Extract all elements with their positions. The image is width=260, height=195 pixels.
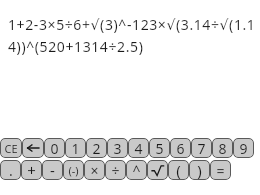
staticText: (-) — [68, 163, 79, 178]
staticText: 6 — [176, 139, 185, 158]
button[interactable]: 4 — [128, 138, 149, 158]
button[interactable]: Equals — [210, 160, 231, 180]
button[interactable]: 8 — [212, 138, 233, 158]
button[interactable]: 2 — [86, 138, 107, 158]
button[interactable]: Negate — [63, 160, 84, 180]
button[interactable]: 6 — [170, 138, 191, 158]
button[interactable]: 3 — [107, 138, 128, 158]
staticText: 7 — [197, 139, 206, 158]
staticText: . — [9, 161, 13, 180]
button[interactable]: 9 — [233, 138, 254, 158]
button[interactable]: 1 — [65, 138, 86, 158]
staticText: - — [50, 160, 55, 180]
staticText: × — [90, 161, 99, 180]
button[interactable]: Multiply — [84, 160, 105, 180]
staticText: ^ — [132, 161, 141, 180]
staticText: 9 — [239, 139, 248, 158]
staticText: CE — [4, 141, 18, 156]
staticText: ) — [197, 160, 202, 180]
staticText: 1 — [71, 139, 80, 158]
button[interactable]: Decimal point — [0, 160, 21, 180]
staticText: 4 — [134, 139, 143, 158]
staticText: + — [27, 160, 36, 180]
button[interactable]: Plus — [21, 160, 42, 180]
staticText: = — [216, 161, 225, 180]
button[interactable]: 0 — [44, 138, 65, 158]
staticText: 1+2-3×5÷6+√(3)^-123×√(3.14÷√(1.14))^(520… — [8, 15, 256, 56]
button[interactable]: Close parenthesis — [189, 160, 210, 180]
staticText: ( — [176, 160, 181, 180]
button[interactable]: Minus — [42, 160, 63, 180]
button[interactable]: 7 — [191, 138, 212, 158]
staticText: 3 — [113, 139, 122, 158]
staticText: ÷ — [111, 161, 120, 180]
staticText: 5 — [155, 139, 164, 158]
button[interactable]: Backspace — [22, 138, 44, 158]
button[interactable]: Power — [126, 160, 147, 180]
button[interactable]: Square root — [147, 160, 168, 180]
staticText: 8 — [218, 139, 227, 158]
button[interactable]: 5 — [149, 138, 170, 158]
button[interactable]: Open parenthesis — [168, 160, 189, 180]
staticText: 0 — [50, 139, 59, 158]
button[interactable]: Clear entry — [0, 138, 22, 158]
staticText: 2 — [92, 139, 101, 158]
button[interactable]: Divide — [105, 160, 126, 180]
